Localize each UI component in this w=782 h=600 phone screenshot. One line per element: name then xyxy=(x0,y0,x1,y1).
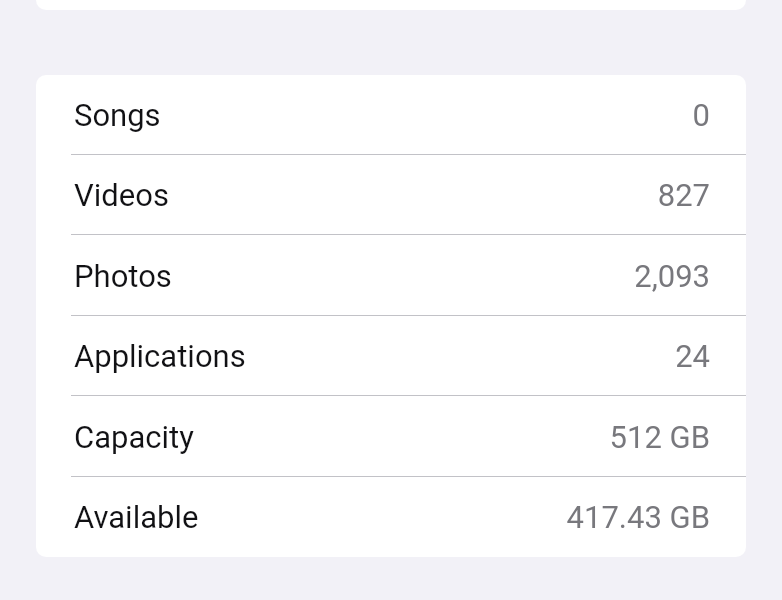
staticText: Applications xyxy=(74,338,246,374)
staticText: Photos xyxy=(74,258,172,294)
staticText: 827 xyxy=(657,177,710,213)
button[interactable]: Capacity xyxy=(36,397,746,477)
staticText: 417.43 GB xyxy=(566,499,710,535)
button[interactable]: Available xyxy=(36,477,746,557)
staticText: 24 xyxy=(675,338,710,374)
staticText: Videos xyxy=(74,177,169,213)
staticText: Capacity xyxy=(74,419,194,455)
staticText: 2,093 xyxy=(634,258,710,294)
button[interactable]: Videos xyxy=(36,155,746,235)
staticText: Songs xyxy=(74,97,161,133)
button[interactable]: Photos xyxy=(36,236,746,316)
staticText: Available xyxy=(74,499,199,535)
button[interactable]: Songs xyxy=(36,75,746,155)
staticText: 512 GB xyxy=(609,419,710,455)
staticText: 0 xyxy=(692,97,710,133)
button[interactable]: Applications xyxy=(36,316,746,396)
